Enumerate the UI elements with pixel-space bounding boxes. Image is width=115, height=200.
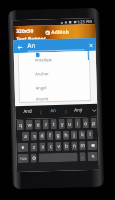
button[interactable]: g [55, 131, 61, 140]
button[interactable]: r [43, 119, 49, 129]
staticText: s [33, 133, 36, 140]
staticText: An [27, 42, 36, 50]
staticText: c [49, 143, 52, 150]
staticText: a [46, 30, 49, 35]
staticText: o [84, 120, 88, 127]
staticText: e [37, 121, 40, 129]
staticText: ?123 [20, 157, 27, 161]
button[interactable]: n [71, 141, 77, 151]
button[interactable]: u [67, 118, 73, 129]
button[interactable]: Antelope [18, 51, 90, 67]
button[interactable]: i [75, 118, 81, 128]
staticText: l [89, 131, 91, 138]
button[interactable]: Shift [17, 143, 28, 152]
staticText: And [23, 108, 32, 114]
staticText: g [56, 132, 60, 139]
staticText: i [77, 120, 79, 127]
button[interactable]: f [47, 131, 53, 140]
staticText: z [32, 144, 35, 151]
button[interactable]: 320x50 [13, 24, 95, 40]
staticText: 320x50 [16, 28, 34, 35]
staticText: q [19, 122, 23, 129]
staticText: m [80, 142, 85, 149]
button[interactable]: v [55, 142, 61, 151]
button[interactable]: j [71, 130, 77, 140]
button[interactable]: c [47, 142, 53, 151]
button[interactable]: Backspace [87, 141, 97, 150]
button[interactable]: a [22, 132, 29, 141]
button[interactable]: More suggestions [90, 104, 98, 117]
staticText: Antelope [35, 57, 52, 63]
staticText: Anoint [36, 96, 49, 102]
staticText: n [72, 142, 76, 150]
staticText: . [82, 154, 84, 159]
button[interactable]: . [79, 152, 86, 161]
button[interactable]: q [17, 120, 24, 130]
button[interactable]: s [31, 131, 37, 141]
button[interactable]: z [30, 142, 37, 152]
button[interactable]: Settings [30, 154, 37, 163]
staticText: Any [74, 106, 82, 112]
staticText: a [24, 133, 27, 140]
staticText: w [28, 122, 32, 129]
button[interactable]: y [59, 119, 65, 129]
button[interactable]: And [15, 105, 40, 116]
button[interactable]: k [79, 130, 85, 139]
staticText: u [68, 121, 72, 128]
staticText: Anchor [35, 71, 49, 77]
button[interactable]: l [87, 130, 93, 139]
staticText: y [61, 121, 64, 128]
staticText: 1:23 PM [77, 19, 93, 24]
staticText: j [73, 131, 75, 139]
button[interactable] [38, 152, 78, 162]
button[interactable]: Search [87, 152, 98, 161]
button[interactable]: d [39, 131, 45, 140]
button[interactable]: Anoint [19, 93, 91, 103]
staticText: f [49, 132, 51, 139]
button[interactable]: o [83, 118, 89, 128]
staticText: Angel [36, 85, 47, 91]
button[interactable]: Back [13, 41, 26, 53]
staticText: t [53, 121, 55, 128]
staticText: Test Banner [16, 35, 46, 40]
staticText: AdMob [51, 29, 69, 36]
button[interactable]: t [51, 119, 57, 129]
button[interactable]: ?123 [17, 154, 29, 163]
button[interactable]: Angel [18, 79, 91, 95]
button[interactable]: p [91, 118, 97, 128]
button[interactable]: An [41, 105, 65, 115]
button[interactable]: e [35, 119, 41, 130]
button[interactable]: Any [66, 104, 90, 115]
button[interactable]: Clear [86, 39, 96, 51]
staticText: h [64, 132, 68, 139]
button[interactable]: b [63, 142, 69, 151]
staticText: x [41, 143, 44, 150]
staticText: b [64, 143, 68, 150]
staticText: v [57, 143, 60, 150]
staticText: d [40, 132, 44, 139]
button[interactable]: x [39, 142, 45, 151]
staticText: k [81, 131, 84, 138]
staticText: r [45, 121, 48, 128]
staticText: p [92, 120, 96, 127]
button[interactable]: h [63, 131, 69, 140]
button[interactable]: m [79, 141, 85, 150]
staticText: An [50, 107, 56, 113]
button[interactable]: Anchor [18, 65, 90, 81]
button[interactable]: w [26, 120, 33, 130]
